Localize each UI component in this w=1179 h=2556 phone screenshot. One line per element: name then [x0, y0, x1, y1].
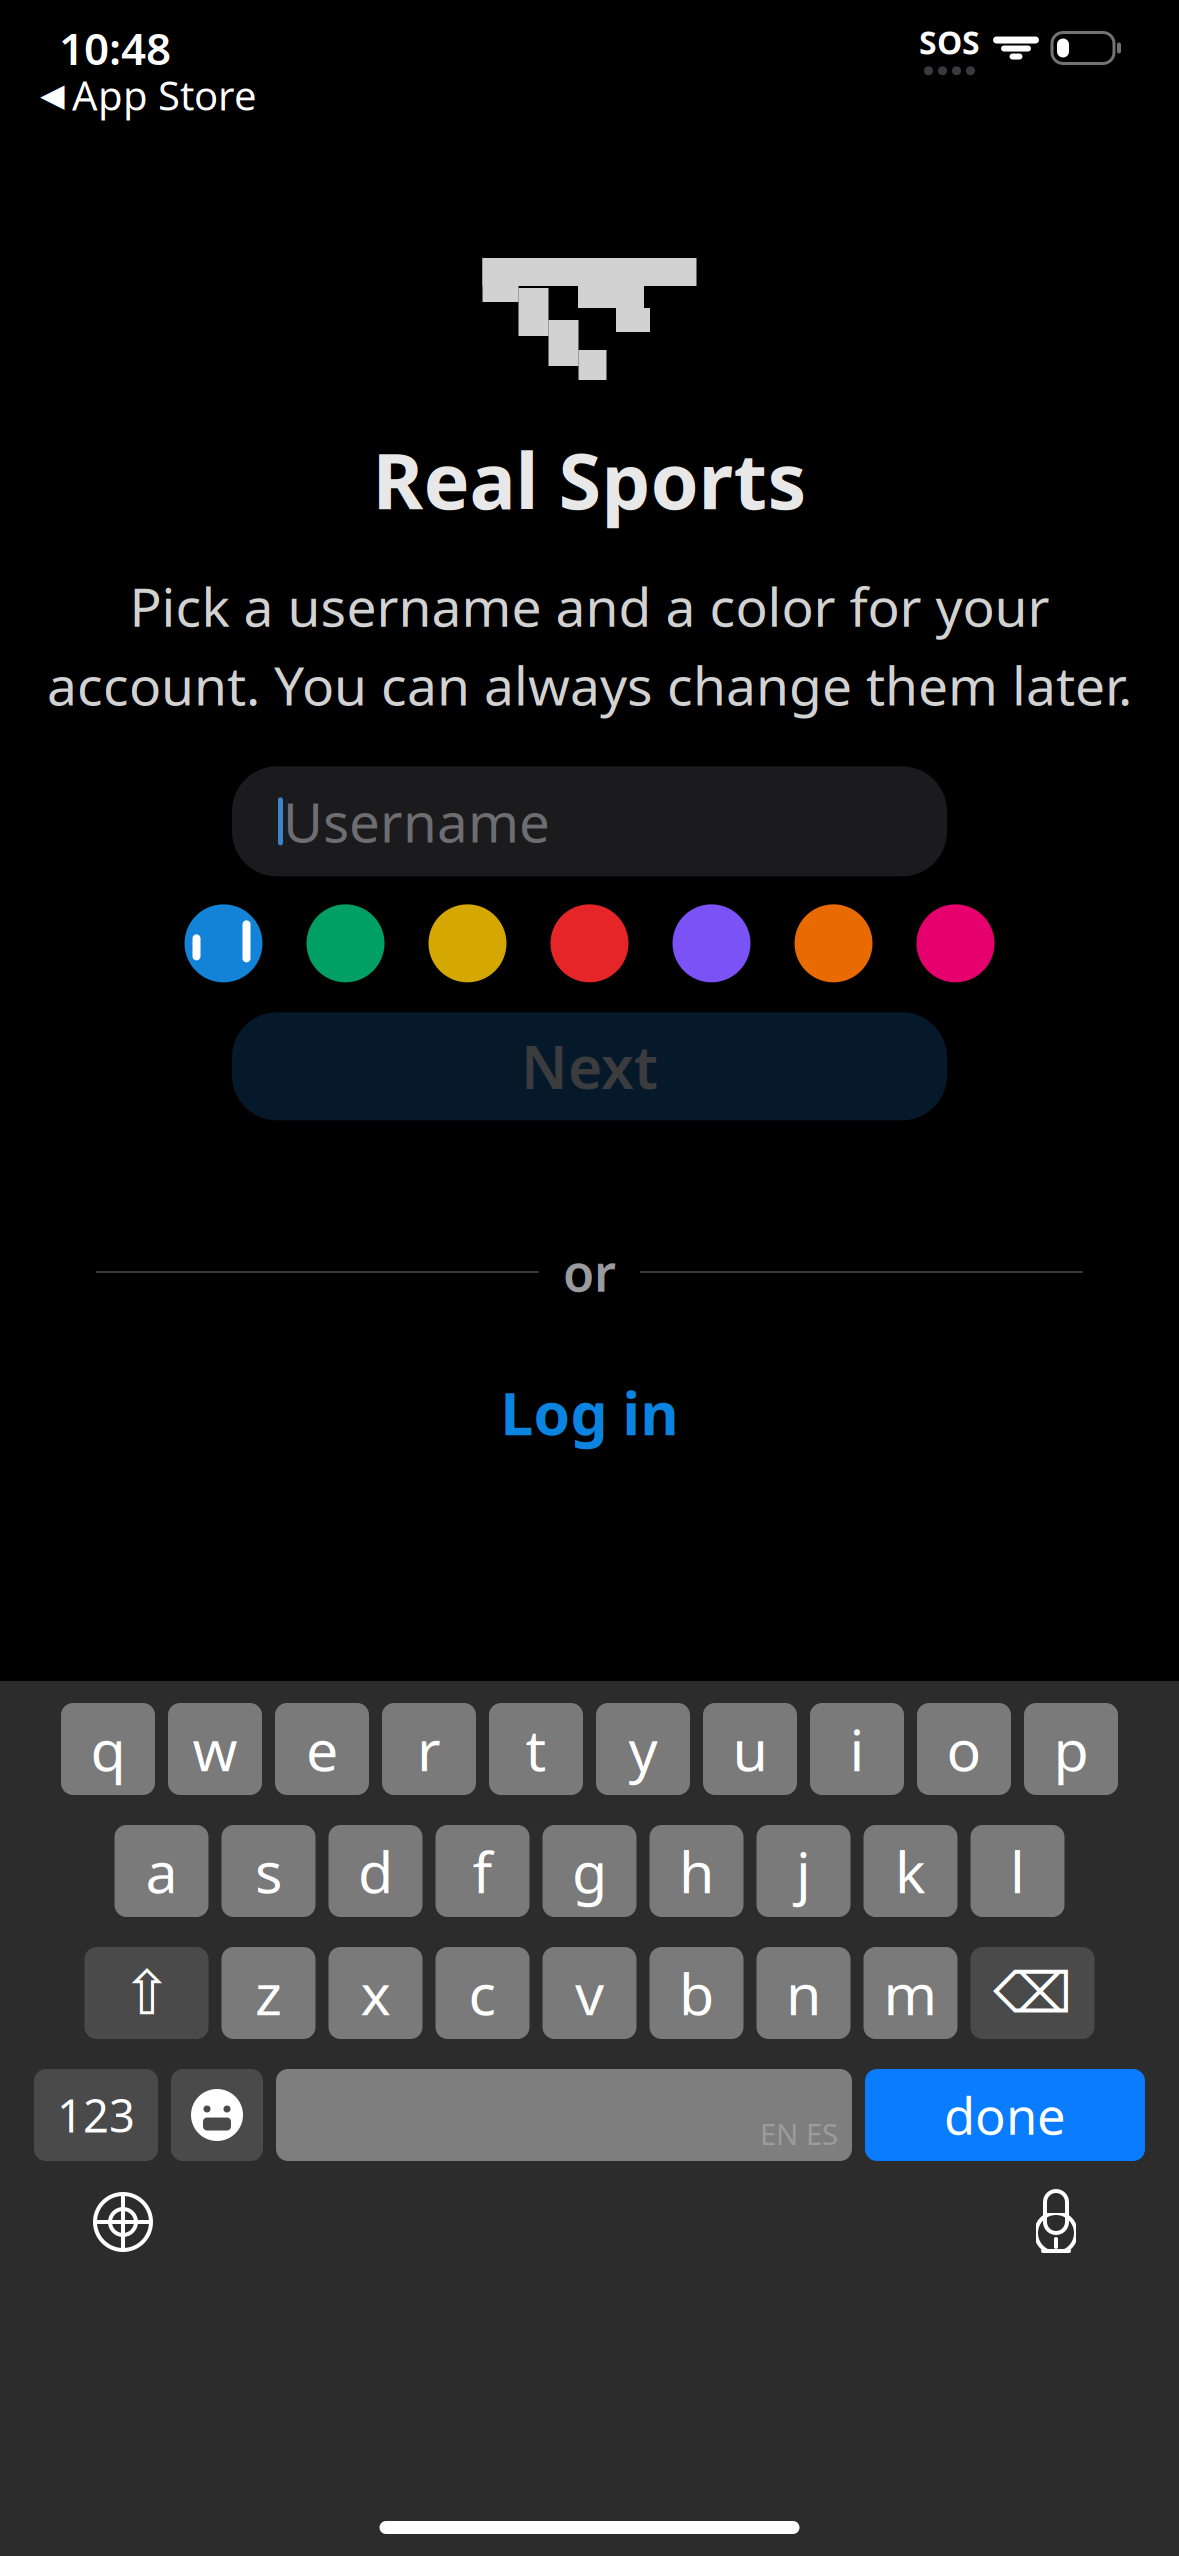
button[interactable]: Colour 4 [528, 900, 650, 986]
staticText: q [90, 1711, 125, 1787]
button[interactable]: Space [276, 2069, 852, 2161]
staticText: s [255, 1833, 282, 1909]
button[interactable]: r [382, 1703, 476, 1795]
button[interactable]: Next keyboard [68, 2167, 178, 2277]
button[interactable]: v [542, 1947, 636, 2039]
staticText: EN ES [760, 2114, 838, 2153]
staticText: e [306, 1711, 338, 1787]
staticText: Log in [500, 1374, 678, 1451]
button[interactable]: h [649, 1825, 743, 1917]
staticText: l [1010, 1833, 1025, 1909]
button[interactable]: y [596, 1703, 690, 1795]
button[interactable]: Colour 7 [894, 900, 1016, 986]
button[interactable]: s [221, 1825, 315, 1917]
staticText: Real Sports [372, 428, 806, 531]
staticText: o [946, 1711, 981, 1787]
staticText: y [628, 1711, 657, 1787]
staticText: k [895, 1833, 926, 1909]
button[interactable]: Colour 5 [650, 900, 772, 986]
button[interactable]: d [328, 1825, 422, 1917]
button[interactable]: k [863, 1825, 957, 1917]
button[interactable]: done [865, 2069, 1145, 2161]
button[interactable]: p [1024, 1703, 1118, 1795]
button[interactable]: x [328, 1947, 422, 2039]
staticText: 123 [57, 2085, 135, 2145]
staticText: r [417, 1711, 441, 1787]
staticText: c [468, 1955, 496, 2031]
button[interactable]: w [168, 1703, 262, 1795]
button[interactable]: c [435, 1947, 529, 2039]
button[interactable]: l [970, 1825, 1064, 1917]
button[interactable]: Colour 6 [772, 900, 894, 986]
button[interactable]: q [61, 1703, 155, 1795]
staticText: or [563, 1238, 616, 1306]
staticText: d [358, 1833, 393, 1909]
button[interactable]: e [275, 1703, 369, 1795]
button[interactable]: Log in [460, 1360, 718, 1465]
button[interactable]: i [810, 1703, 904, 1795]
staticText: 10:48 [59, 19, 171, 77]
button[interactable]: n [756, 1947, 850, 2039]
button[interactable]: m [863, 1947, 957, 2039]
staticText: ⇧ [121, 1958, 172, 2028]
staticText: Pick a username and a color for your [129, 571, 1049, 641]
button[interactable]: Delete [970, 1947, 1094, 2039]
staticText: b [679, 1955, 714, 2031]
staticText: SOS [919, 21, 980, 63]
button[interactable]: Next [232, 1012, 947, 1120]
button[interactable]: Emoji [171, 2069, 263, 2161]
button[interactable]: j [756, 1825, 850, 1917]
button[interactable]: f [435, 1825, 529, 1917]
staticText: a [145, 1833, 177, 1909]
staticText: ◀ [40, 77, 65, 113]
button[interactable]: Shift [84, 1947, 208, 2039]
button[interactable]: Colour 2 [284, 900, 406, 986]
staticText: ⌫ [993, 1961, 1072, 2025]
button[interactable]: Colour 3 [406, 900, 528, 986]
staticText: h [679, 1833, 714, 1909]
staticText: p [1053, 1711, 1088, 1787]
staticText: u [732, 1711, 767, 1787]
button[interactable]: u [703, 1703, 797, 1795]
button[interactable]: z [221, 1947, 315, 2039]
staticText: j [796, 1833, 811, 1909]
button[interactable]: t [489, 1703, 583, 1795]
button[interactable]: g [542, 1825, 636, 1917]
button[interactable]: Blue, selected [162, 900, 284, 986]
staticText: f [472, 1833, 492, 1909]
staticText: i [849, 1711, 864, 1787]
button[interactable]: a [114, 1825, 208, 1917]
staticText: account. You can always change them late… [47, 649, 1132, 720]
staticText: m [883, 1955, 937, 2031]
button[interactable]: Username [232, 766, 947, 876]
staticText: w [192, 1711, 237, 1787]
staticText: v [575, 1955, 604, 2031]
staticText: x [360, 1955, 390, 2031]
staticText: g [572, 1833, 607, 1909]
staticText: Username [283, 785, 550, 858]
staticText: z [255, 1955, 282, 2031]
button[interactable]: b [649, 1947, 743, 2039]
staticText: App Store [72, 68, 257, 121]
staticText: t [525, 1711, 546, 1787]
button[interactable]: 123 [34, 2069, 158, 2161]
button[interactable]: Dictation [1001, 2167, 1111, 2277]
staticText: Next [521, 1027, 658, 1105]
staticText: done [944, 2081, 1066, 2149]
staticText: n [786, 1955, 821, 2031]
button[interactable]: o [917, 1703, 1011, 1795]
